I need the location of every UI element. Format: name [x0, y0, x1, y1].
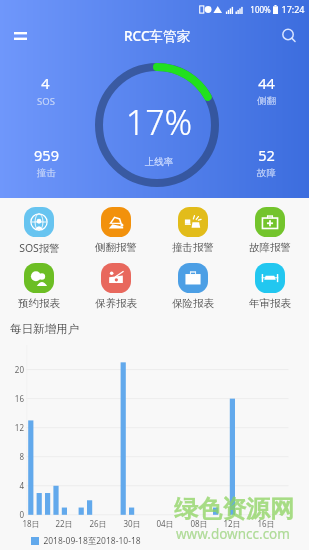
button[interactable]: SOS报警 [5, 207, 73, 255]
staticText: 52 [258, 145, 275, 165]
staticText: 保险报表 [172, 297, 214, 310]
staticText: 上线率 [107, 156, 211, 168]
staticText: 44 [258, 73, 275, 93]
staticText: 30日 [117, 518, 147, 529]
staticText: 绿色资源网 [174, 494, 294, 524]
staticText: 撞击报警 [172, 241, 214, 254]
staticText: 17:24 [281, 3, 305, 15]
staticText: RCC车管家 [124, 27, 190, 45]
staticText: 100% [250, 4, 271, 15]
button[interactable]: 侧翻报警 [82, 207, 150, 254]
button[interactable]: 年审报表 [236, 263, 304, 310]
staticText: www.downcc.com [176, 525, 290, 543]
staticText: 04日 [150, 518, 180, 529]
staticText: 18日 [16, 518, 46, 529]
staticText: 16日 [251, 518, 281, 529]
button[interactable]: Open navigation menu [2, 18, 38, 54]
button[interactable]: 保险报表 [159, 263, 227, 310]
staticText: 每日新增用户 [10, 322, 79, 336]
staticText: 959 [34, 145, 59, 165]
staticText: 08日 [184, 518, 214, 529]
staticText: 16 [0, 393, 24, 404]
staticText: 8 [0, 451, 24, 462]
staticText: 保养报表 [95, 297, 137, 310]
staticText: 4 [41, 73, 50, 93]
button[interactable]: Search [272, 18, 308, 54]
staticText: SOS [37, 95, 55, 108]
staticText: 26日 [83, 518, 113, 529]
button[interactable]: 保养报表 [82, 263, 150, 310]
staticText: 20 [0, 364, 24, 375]
staticText: 17% [107, 99, 211, 145]
staticText: 2018-09-18至2018-10-18 [43, 535, 141, 547]
staticText: 故障报警 [249, 241, 291, 254]
button[interactable]: 撞击报警 [159, 207, 227, 254]
staticText: 12日 [217, 518, 247, 529]
staticText: 12 [0, 422, 24, 433]
staticText: 预约报表 [18, 297, 60, 310]
staticText: SOS报警 [19, 241, 60, 255]
staticText: 0 [0, 509, 24, 520]
staticText: 22日 [49, 518, 79, 529]
staticText: 4 [0, 480, 24, 491]
button[interactable]: 故障报警 [236, 207, 304, 254]
staticText: 年审报表 [249, 297, 291, 310]
button[interactable]: 预约报表 [5, 263, 73, 310]
staticText: 侧翻 [257, 95, 276, 107]
staticText: 侧翻报警 [95, 241, 137, 254]
staticText: 撞击 [37, 167, 56, 179]
staticText: 故障 [257, 167, 276, 179]
